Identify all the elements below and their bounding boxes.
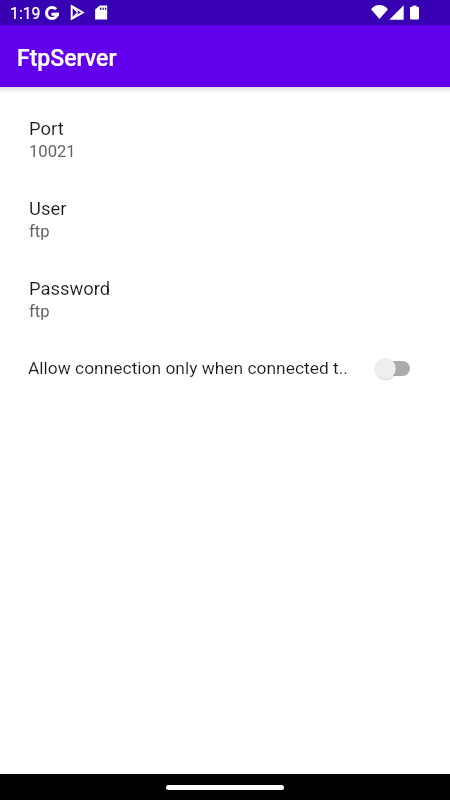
- staticText: 1:19: [10, 4, 41, 23]
- button[interactable]: Password: [0, 272, 450, 327]
- staticText: Port: [29, 118, 64, 140]
- button[interactable]: Allow connection only when connected to …: [375, 357, 410, 379]
- button[interactable]: User: [0, 192, 450, 247]
- staticText: Password: [29, 278, 111, 300]
- staticText: 10021: [29, 142, 76, 161]
- staticText: ftp: [29, 302, 50, 321]
- button[interactable]: Allow connection only when connected t..: [0, 348, 450, 388]
- staticText: User: [29, 198, 67, 220]
- button[interactable]: Port: [0, 112, 450, 167]
- staticText: Allow connection only when connected t..: [28, 358, 375, 378]
- staticText: ftp: [29, 222, 50, 241]
- staticText: FtpServer: [17, 45, 117, 72]
